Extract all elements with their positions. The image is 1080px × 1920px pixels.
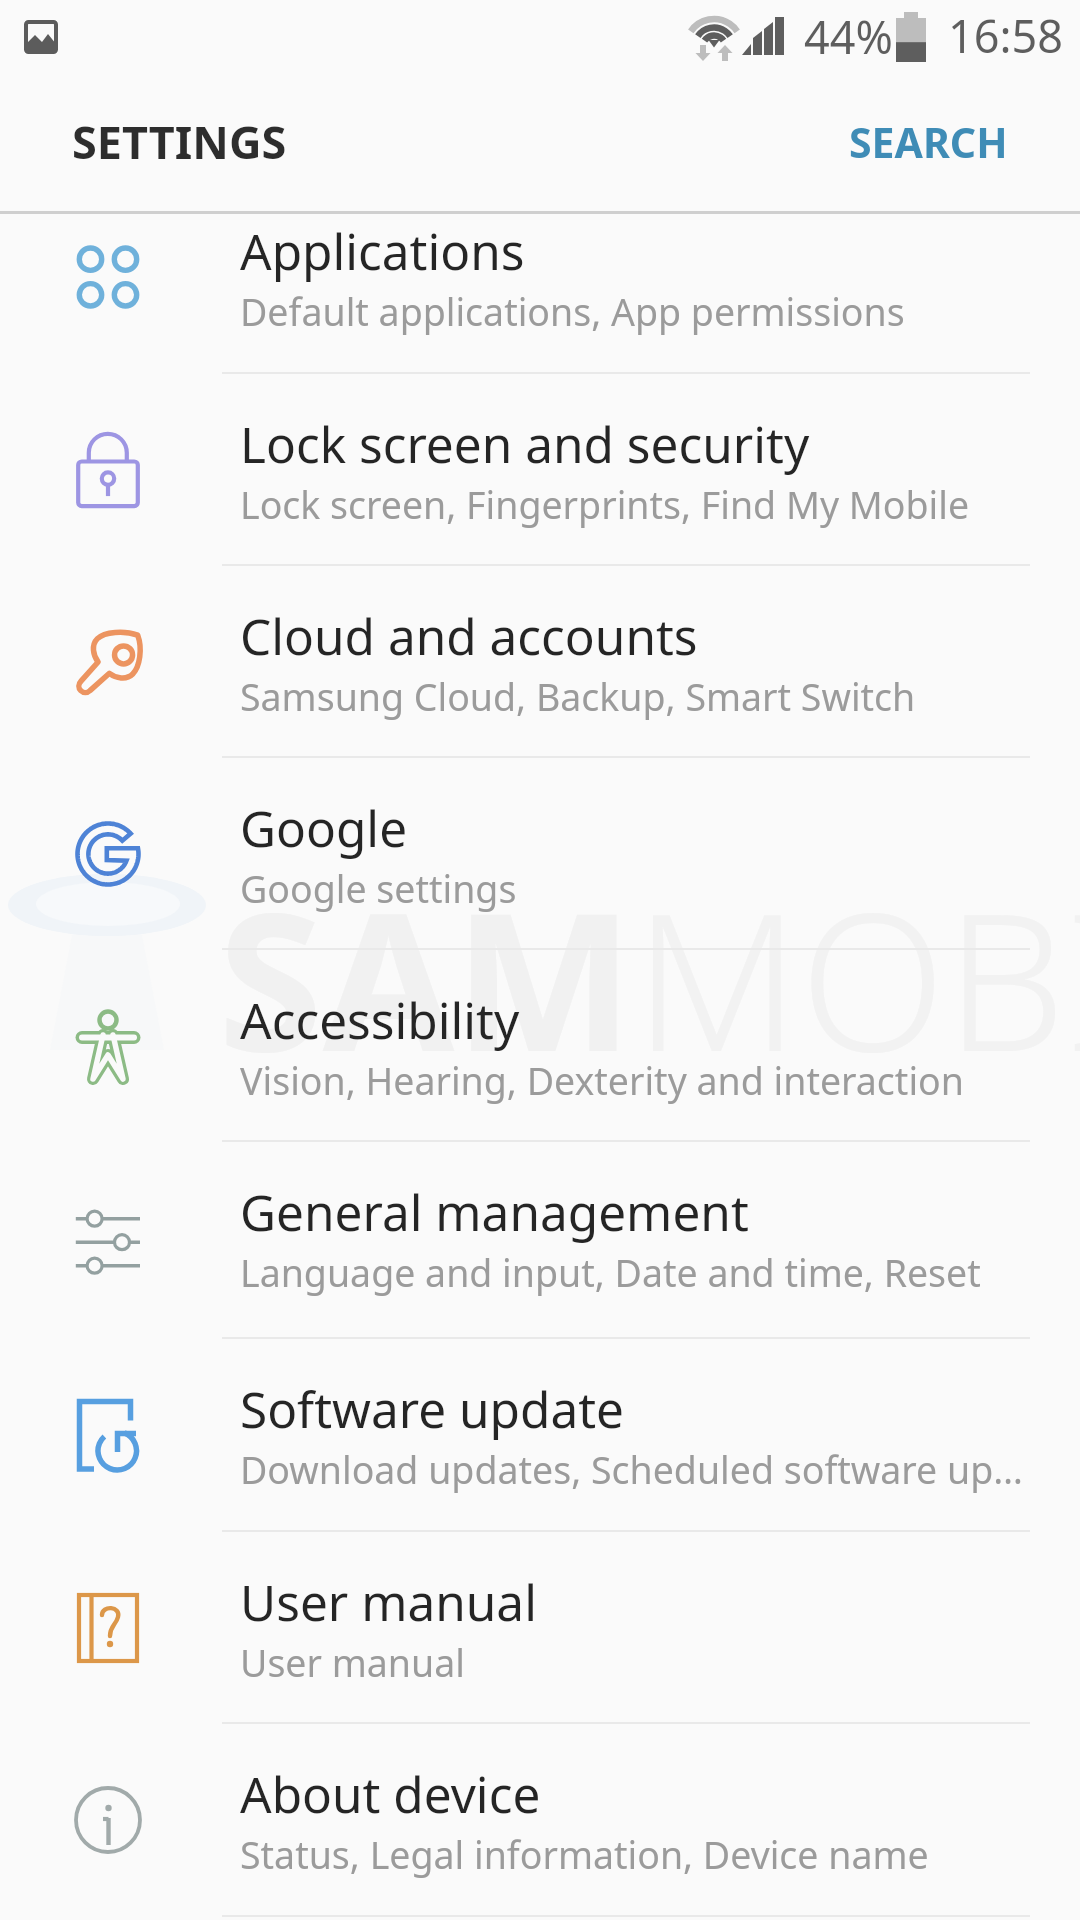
staticText: General management	[240, 1178, 1050, 1245]
staticText: Vision, Hearing, Dexterity and interacti…	[240, 1055, 1040, 1106]
staticText: Status, Legal information, Device name	[240, 1829, 1040, 1880]
button[interactable]: Accessibility	[0, 950, 1080, 1142]
staticText: Download updates, Scheduled software upd…	[240, 1444, 1040, 1495]
staticText: SAM	[218, 848, 634, 1107]
staticText: Default applications, App permissions	[240, 286, 1040, 337]
button[interactable]: Cloud and accounts	[0, 566, 1080, 758]
button[interactable]: General management	[0, 1142, 1080, 1339]
button[interactable]: User manual	[0, 1532, 1080, 1724]
staticText: 16:58	[948, 5, 1064, 66]
button[interactable]: Software update	[0, 1339, 1080, 1532]
staticText: MOBILE	[634, 848, 1080, 1107]
staticText: Lock screen, Fingerprints, Find My Mobil…	[240, 479, 1040, 530]
staticText: Language and input, Date and time, Reset	[240, 1247, 1040, 1298]
staticText: SETTINGS	[72, 111, 287, 172]
staticText: About device	[240, 1760, 1050, 1827]
staticText: Accessibility	[240, 986, 1050, 1053]
staticText: Applications	[240, 217, 1050, 284]
staticText: Lock screen and security	[240, 410, 1050, 477]
staticText: Software update	[240, 1375, 1050, 1442]
staticText: Google	[240, 794, 1050, 861]
button[interactable]: Applications	[0, 214, 1080, 374]
staticText: Samsung Cloud, Backup, Smart Switch	[240, 671, 1040, 722]
button[interactable]: About device	[0, 1724, 1080, 1917]
staticText: 44%	[804, 6, 893, 67]
staticText: User manual	[240, 1637, 1040, 1688]
button[interactable]: Google	[0, 758, 1080, 950]
button[interactable]: Search settings	[835, 96, 1022, 188]
staticText: SEARCH	[849, 114, 1008, 170]
button[interactable]: Lock screen and security	[0, 374, 1080, 566]
staticText: Cloud and accounts	[240, 602, 1050, 669]
staticText: User manual	[240, 1568, 1050, 1635]
staticText: Google settings	[240, 863, 1040, 914]
